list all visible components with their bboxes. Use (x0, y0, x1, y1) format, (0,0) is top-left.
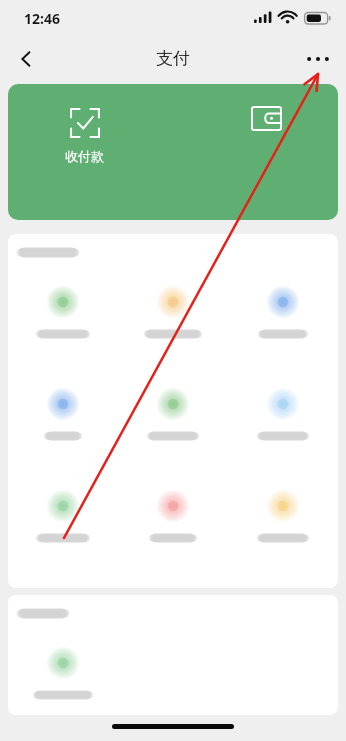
button[interactable]: Service (8, 270, 118, 372)
button[interactable]: Service (8, 631, 118, 715)
button[interactable]: Service (228, 474, 338, 576)
button[interactable]: Service (8, 372, 118, 474)
button[interactable]: Wallet (246, 106, 286, 140)
button[interactable]: Service (8, 474, 118, 576)
button[interactable]: Back (6, 39, 46, 79)
button[interactable]: Service (118, 474, 228, 576)
button[interactable]: More options (298, 39, 338, 79)
staticText: 收付款 (65, 148, 104, 164)
staticText: 12:46 (24, 9, 60, 28)
button[interactable]: Service (118, 270, 228, 372)
button[interactable]: 收付款 (65, 106, 104, 164)
button[interactable]: Service (228, 372, 338, 474)
staticText: 支付 (156, 48, 190, 69)
button[interactable]: Service (118, 372, 228, 474)
button[interactable]: Service (228, 270, 338, 372)
